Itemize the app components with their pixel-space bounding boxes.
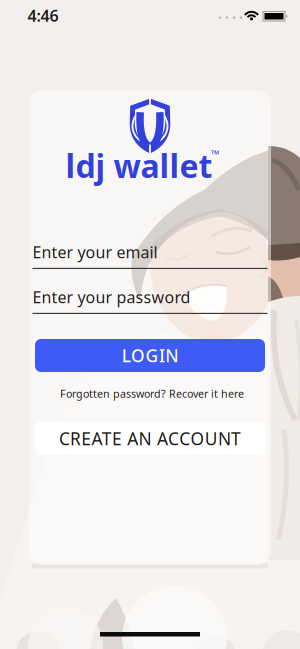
staticText: Forgotten password? Recover it here [60, 386, 244, 401]
button[interactable]: CREATE AN ACCOUNT [35, 422, 265, 455]
button[interactable]: Enter your email [32, 241, 267, 269]
staticText: ™ [211, 147, 219, 161]
button[interactable]: Enter your password [32, 286, 267, 314]
staticText: Enter your password [32, 286, 190, 308]
staticText: Enter your email [32, 241, 157, 263]
staticText: LOGIN [122, 344, 178, 367]
button[interactable]: LOGIN [35, 339, 265, 372]
button[interactable]: Forgotten password? Recover it here [60, 386, 244, 401]
staticText: ldj wallet [65, 144, 212, 187]
staticText: 4:46 [27, 5, 58, 26]
staticText: CREATE AN ACCOUNT [59, 427, 241, 450]
